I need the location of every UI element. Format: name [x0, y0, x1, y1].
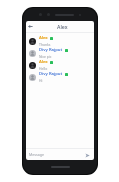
- staticText: Alex: [39, 59, 48, 65]
- staticText: Divy Rajput: [39, 47, 63, 53]
- button[interactable]: Alex: [26, 59, 94, 71]
- button[interactable]: Message: [29, 152, 83, 157]
- staticText: Alex: [39, 35, 48, 41]
- staticText: Nice pic: [39, 54, 52, 59]
- button[interactable]: Send: [83, 151, 91, 159]
- staticText: Hi: [39, 78, 43, 83]
- staticText: Thanks: [39, 42, 51, 47]
- button[interactable]: Alex: [26, 35, 94, 47]
- button[interactable]: Divy Rajput: [26, 47, 94, 59]
- staticText: Hello: [39, 66, 48, 71]
- staticText: Divy Rajput: [39, 71, 63, 77]
- button[interactable]: Back: [26, 22, 35, 31]
- staticText: Alex: [57, 23, 68, 30]
- button[interactable]: Divy Rajput: [26, 71, 94, 83]
- staticText: Message: [29, 152, 44, 157]
